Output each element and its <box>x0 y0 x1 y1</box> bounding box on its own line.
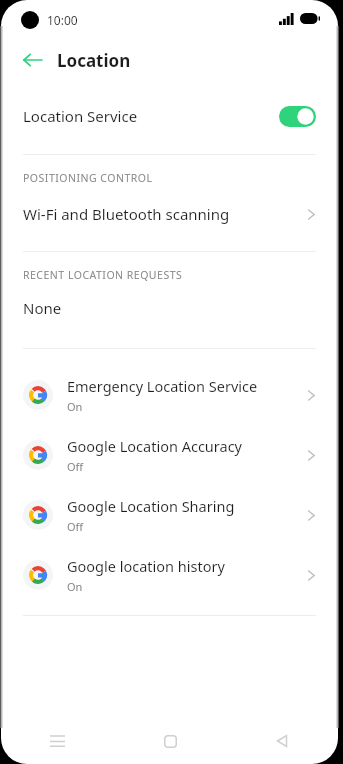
staticText: Location Service <box>23 106 279 126</box>
staticText: On <box>67 399 83 414</box>
button[interactable]: Home <box>114 724 226 758</box>
staticText: Google location history <box>67 556 225 576</box>
button[interactable]: Google Location Sharing <box>1 485 338 545</box>
staticText: Wi-Fi and Bluetooth scanning <box>23 204 307 224</box>
button[interactable]: Wi-Fi and Bluetooth scanning <box>1 199 338 229</box>
staticText: Location <box>57 49 131 72</box>
button[interactable]: Google location history <box>1 545 338 605</box>
button[interactable]: Location Service toggle, on <box>279 106 316 127</box>
staticText: Google Location Sharing <box>67 496 235 516</box>
staticText: Off <box>67 459 84 474</box>
staticText: POSITIONING CONTROL <box>23 171 153 185</box>
button[interactable]: Google Location Accuracy <box>1 425 338 485</box>
button[interactable]: Emergency Location Service <box>1 365 338 425</box>
button[interactable]: Recent apps <box>1 724 114 758</box>
staticText: Off <box>67 519 84 534</box>
button[interactable]: Back <box>226 724 338 758</box>
staticText: None <box>23 298 62 318</box>
button[interactable]: Back <box>15 42 51 78</box>
staticText: RECENT LOCATION REQUESTS <box>23 268 183 282</box>
staticText: On <box>67 579 83 594</box>
staticText: Emergency Location Service <box>67 376 258 396</box>
staticText: 10:00 <box>47 12 78 28</box>
button[interactable]: Location Service <box>1 90 338 142</box>
staticText: Google Location Accuracy <box>67 436 242 456</box>
